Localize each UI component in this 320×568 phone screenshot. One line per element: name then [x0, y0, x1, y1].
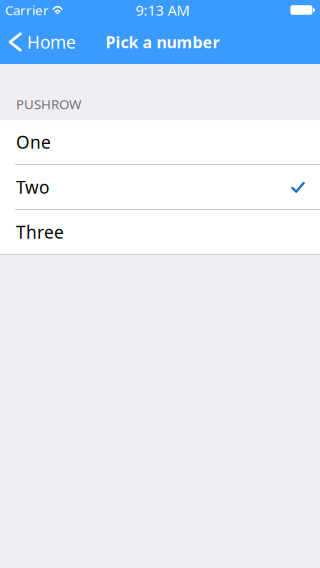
staticText: PUSHROW	[16, 95, 81, 113]
button[interactable]: One	[0, 120, 320, 164]
staticText: Home	[27, 30, 76, 53]
staticText: 9:13 AM	[135, 0, 189, 20]
button[interactable]: Home	[0, 20, 90, 64]
staticText: Pick a number	[105, 31, 219, 53]
button[interactable]: Two	[0, 165, 320, 209]
staticText: Carrier	[5, 1, 49, 19]
staticText: Two	[16, 175, 49, 198]
staticText: One	[16, 130, 51, 153]
button[interactable]: Three	[0, 210, 320, 254]
staticText: Three	[16, 220, 64, 243]
